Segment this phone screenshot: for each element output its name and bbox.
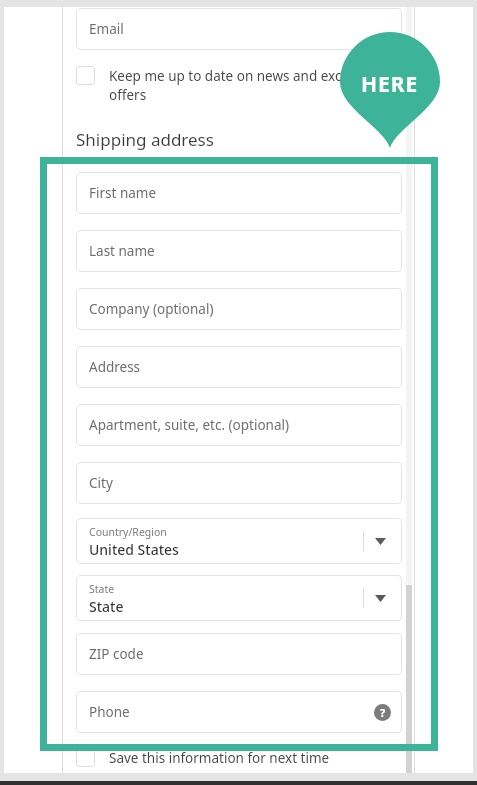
- button[interactable]: Help about phone number: [374, 704, 391, 721]
- button[interactable]: Address: [76, 346, 402, 388]
- button[interactable]: Country/Region: [76, 518, 402, 564]
- staticText: State: [89, 597, 124, 616]
- staticText: ZIP code: [89, 645, 144, 663]
- staticText: Company (optional): [89, 300, 214, 318]
- staticText: First name: [89, 184, 157, 202]
- staticText: Save this information for next time: [109, 749, 330, 767]
- staticText: Apartment, suite, etc. (optional): [89, 416, 290, 434]
- staticText: City: [89, 474, 113, 492]
- staticText: Country/Region: [89, 525, 167, 539]
- staticText: Address: [89, 358, 141, 376]
- staticText: Email: [89, 20, 124, 38]
- staticText: Last name: [89, 242, 155, 260]
- button[interactable]: First name: [76, 172, 402, 214]
- button[interactable]: Apartment, suite, etc. (optional): [76, 404, 402, 446]
- button[interactable]: Email: [76, 8, 402, 50]
- staticText: Keep me up to date on news and exclusive: [109, 67, 378, 85]
- button[interactable]: Last name: [76, 230, 402, 272]
- button[interactable]: State: [76, 575, 402, 621]
- other: HERE marker: [340, 32, 440, 148]
- button[interactable]: Phone: [76, 691, 402, 733]
- button[interactable]: Save this information for next time: [76, 748, 297, 767]
- staticText: offers: [109, 86, 147, 104]
- button[interactable]: ZIP code: [76, 633, 402, 675]
- staticText: United States: [89, 540, 179, 559]
- button[interactable]: City: [76, 462, 402, 504]
- staticText: State: [89, 582, 115, 596]
- staticText: Phone: [89, 703, 130, 721]
- staticText: Shipping address: [76, 128, 214, 151]
- button[interactable]: Keep me up to date on news and exclusive: [76, 66, 345, 85]
- staticText: ?: [380, 705, 386, 720]
- button[interactable]: Company (optional): [76, 288, 402, 330]
- staticText: HERE: [361, 70, 419, 99]
